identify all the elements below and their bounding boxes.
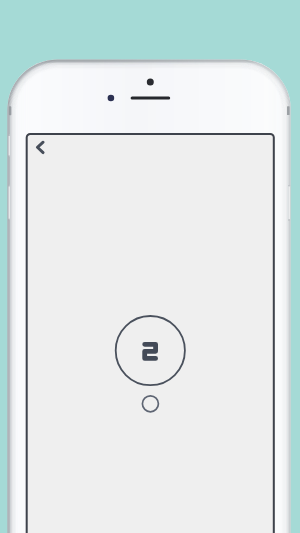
button[interactable]: Counter: 2 — [114, 315, 186, 387]
button[interactable]: Back — [28, 134, 56, 162]
button[interactable]: Reset — [141, 395, 159, 413]
